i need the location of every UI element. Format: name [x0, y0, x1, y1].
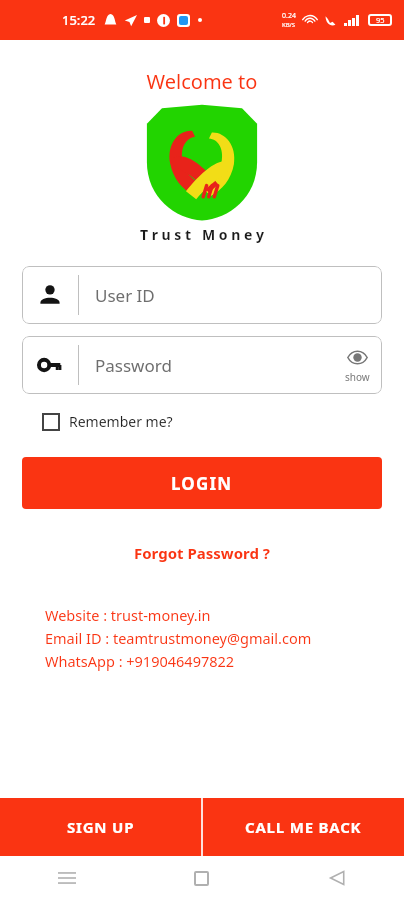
staticText: KB/S — [282, 21, 296, 29]
staticText: 15:22 — [62, 11, 96, 29]
staticText: WhatsApp : +919046497822 — [45, 651, 235, 671]
button[interactable]: Remember me? — [40, 408, 175, 435]
button[interactable]: Show password — [333, 347, 382, 384]
staticText: LOGIN — [171, 472, 233, 495]
button[interactable]: Recent apps — [0, 856, 134, 900]
staticText: 95 — [376, 15, 385, 25]
button[interactable]: LOGIN — [22, 457, 382, 509]
staticText: 0.24 — [282, 11, 296, 21]
staticText: Welcome to — [0, 68, 404, 95]
staticText: T r u s t M o n e y — [0, 225, 404, 244]
staticText: CALL ME BACK — [245, 817, 362, 837]
button[interactable]: Forgot Password ? — [126, 539, 278, 567]
staticText: SIGN UP — [67, 817, 135, 837]
staticText: Remember me? — [69, 412, 173, 431]
staticText: Website : trust-money.in — [45, 605, 211, 625]
button[interactable]: User ID — [22, 266, 382, 324]
button[interactable]: Back — [269, 856, 404, 900]
button[interactable]: CALL ME BACK — [203, 798, 404, 856]
staticText: User ID — [95, 284, 155, 307]
button[interactable]: Password — [22, 336, 382, 394]
staticText: Email ID : teamtrustmoney@gmail.com — [45, 628, 312, 648]
staticText: show — [345, 370, 370, 384]
button[interactable]: SIGN UP — [0, 798, 201, 856]
staticText: Password — [95, 354, 172, 377]
staticText: Forgot Password ? — [134, 543, 270, 563]
button[interactable]: Home — [134, 856, 269, 900]
